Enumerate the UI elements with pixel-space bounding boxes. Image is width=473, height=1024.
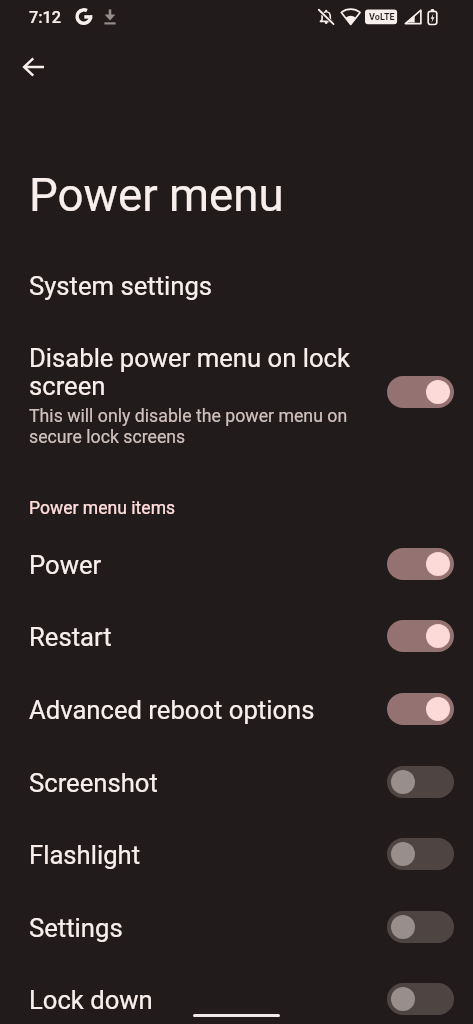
button[interactable]: Off	[387, 838, 454, 870]
staticText: Flashlight	[29, 840, 141, 870]
button[interactable]: Off	[387, 983, 454, 1015]
staticText: Lock down	[29, 985, 153, 1015]
staticText: 7:12	[29, 8, 62, 27]
staticText: Power menu items	[29, 498, 176, 519]
staticText: VoLTE	[369, 12, 395, 23]
button[interactable]: Disable power menu on lock screen	[0, 333, 473, 451]
button[interactable]: On	[387, 548, 454, 580]
staticText: System settings	[29, 271, 213, 301]
staticText: Advanced reboot options	[29, 695, 315, 725]
button[interactable]: Power	[0, 528, 473, 601]
button[interactable]: Flashlight	[0, 818, 473, 891]
staticText: This will only disable the power menu on…	[29, 406, 371, 447]
button[interactable]: Screenshot	[0, 746, 473, 819]
staticText: Disable power menu on lock screen	[29, 343, 371, 402]
staticText: Settings	[29, 913, 123, 943]
button[interactable]: Settings	[0, 891, 473, 964]
button[interactable]: On	[387, 620, 454, 652]
staticText: Power menu	[29, 169, 284, 223]
button[interactable]: Off	[387, 911, 454, 943]
button[interactable]: Navigate up	[10, 43, 58, 91]
button[interactable]: Advanced reboot options	[0, 673, 473, 746]
staticText: Restart	[29, 622, 112, 652]
button[interactable]: Restart	[0, 600, 473, 673]
button[interactable]: On	[387, 376, 454, 408]
button[interactable]: Lock down	[0, 963, 473, 1024]
staticText: Screenshot	[29, 768, 158, 798]
button[interactable]: Off	[387, 766, 454, 798]
staticText: Power	[29, 550, 102, 580]
button[interactable]: On	[387, 693, 454, 725]
